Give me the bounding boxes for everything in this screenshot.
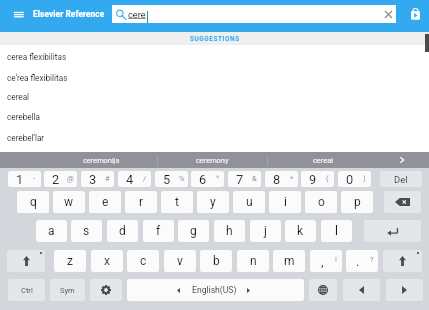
button[interactable]: cerea flexibilitas	[0, 47, 429, 67]
staticText: ceremonija	[83, 156, 120, 165]
staticText: j	[264, 224, 267, 238]
button[interactable]: Shift	[383, 250, 422, 272]
button[interactable]: c	[127, 250, 159, 272]
button[interactable]: u	[233, 191, 265, 213]
staticText: -	[33, 174, 36, 183]
button[interactable]: cerebella	[0, 107, 429, 127]
button[interactable]: y	[197, 191, 229, 213]
button[interactable]: .	[346, 250, 378, 272]
button[interactable]: cerebelˈlar	[0, 127, 429, 147]
staticText: i	[284, 195, 287, 209]
staticText: x	[104, 254, 110, 268]
staticText: English(US)	[192, 285, 237, 295]
staticText: p	[354, 195, 361, 209]
button[interactable]: 0	[338, 171, 371, 187]
staticText: )	[363, 174, 366, 183]
staticText: cereal	[313, 156, 333, 165]
staticText: v	[177, 254, 183, 268]
button[interactable]: m	[273, 250, 305, 272]
staticText: ,	[321, 254, 324, 269]
button[interactable]: d	[107, 220, 138, 242]
button[interactable]: h	[214, 220, 245, 242]
button[interactable]: x	[91, 250, 123, 272]
button[interactable]: 1	[8, 171, 41, 187]
staticText: cerebella	[7, 112, 41, 122]
button[interactable]: ceremonija	[45, 152, 157, 168]
button[interactable]: q	[17, 191, 49, 213]
staticText: h	[226, 224, 233, 238]
staticText: f	[156, 224, 161, 238]
button[interactable]: ,	[310, 250, 342, 272]
staticText: c	[140, 254, 147, 268]
button[interactable]: 5	[155, 171, 188, 187]
staticText: r	[139, 195, 144, 209]
button[interactable]: Del	[380, 171, 422, 187]
staticText: 7	[236, 172, 244, 187]
button[interactable]: ceˈrea flexibilitas	[0, 67, 429, 87]
button[interactable]: Backspace	[384, 191, 421, 213]
button[interactable]: s	[71, 220, 102, 242]
button[interactable]: 3	[81, 171, 114, 187]
button[interactable]: Enter	[364, 220, 421, 242]
staticText: cereal	[7, 92, 30, 102]
staticText: s	[83, 224, 90, 238]
button[interactable]: cereal	[267, 152, 378, 168]
button[interactable]: 8	[265, 171, 298, 187]
button[interactable]: 2	[44, 171, 77, 187]
button[interactable]: g	[178, 220, 209, 242]
button[interactable]: Play Store	[405, 4, 425, 24]
button[interactable]: r	[125, 191, 157, 213]
staticText: 2	[52, 172, 60, 187]
button[interactable]: k	[285, 220, 316, 242]
button[interactable]: 9	[301, 171, 334, 187]
button[interactable]: Right	[386, 279, 423, 301]
button[interactable]: More suggestions	[386, 152, 418, 168]
button[interactable]: o	[305, 191, 337, 213]
staticText: z	[67, 254, 73, 268]
button[interactable]: n	[237, 250, 269, 272]
staticText: 3	[89, 172, 97, 187]
button[interactable]: Sym	[50, 279, 85, 301]
button[interactable]: t	[161, 191, 193, 213]
button[interactable]: w	[53, 191, 85, 213]
button[interactable]: 4	[118, 171, 151, 187]
button[interactable]: l	[321, 220, 352, 242]
button[interactable]: z	[54, 250, 86, 272]
button[interactable]: Ctrl	[8, 279, 45, 301]
button[interactable]: p	[341, 191, 373, 213]
staticText: Sym	[60, 286, 75, 295]
staticText: 6	[199, 172, 207, 187]
staticText: ^	[216, 174, 220, 183]
button[interactable]: Space	[127, 279, 304, 301]
button[interactable]: f	[143, 220, 174, 242]
staticText: m	[284, 254, 295, 268]
button[interactable]: 7	[228, 171, 261, 187]
button[interactable]: cereal	[0, 87, 429, 107]
staticText: cerebelˈlar	[7, 132, 45, 143]
staticText: 1	[16, 172, 24, 187]
staticText: t	[175, 195, 179, 209]
button[interactable]: i	[269, 191, 301, 213]
staticText: k	[297, 224, 304, 238]
button[interactable]: Clear	[380, 6, 396, 22]
button[interactable]: b	[200, 250, 232, 272]
staticText: 8	[273, 172, 281, 187]
button[interactable]: Shift	[7, 250, 45, 272]
button[interactable]: Left	[343, 279, 380, 301]
button[interactable]: Menu	[8, 5, 30, 26]
staticText: y	[210, 195, 216, 209]
staticText: cere	[128, 9, 146, 20]
staticText: cerea flexibilitas	[7, 52, 67, 62]
staticText: ceremony	[196, 156, 229, 165]
button[interactable]: j	[250, 220, 281, 242]
button[interactable]: ceremony	[157, 152, 268, 168]
staticText: Ctrl	[21, 286, 33, 295]
button[interactable]: a	[36, 220, 67, 242]
button[interactable]: e	[89, 191, 121, 213]
button[interactable]: v	[164, 250, 196, 272]
button[interactable]: 6	[191, 171, 224, 187]
button[interactable]: Change language	[309, 279, 337, 301]
staticText: e	[102, 195, 109, 209]
staticText: .	[356, 254, 360, 269]
button[interactable]: Settings	[90, 279, 122, 301]
